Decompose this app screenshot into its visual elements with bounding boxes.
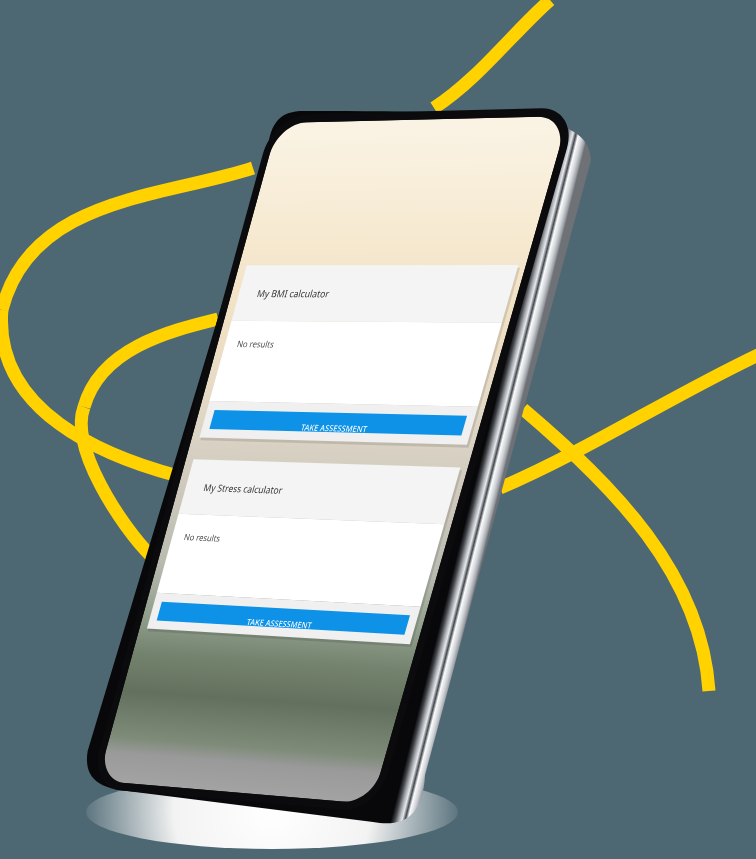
button[interactable] [0,0,756,859]
